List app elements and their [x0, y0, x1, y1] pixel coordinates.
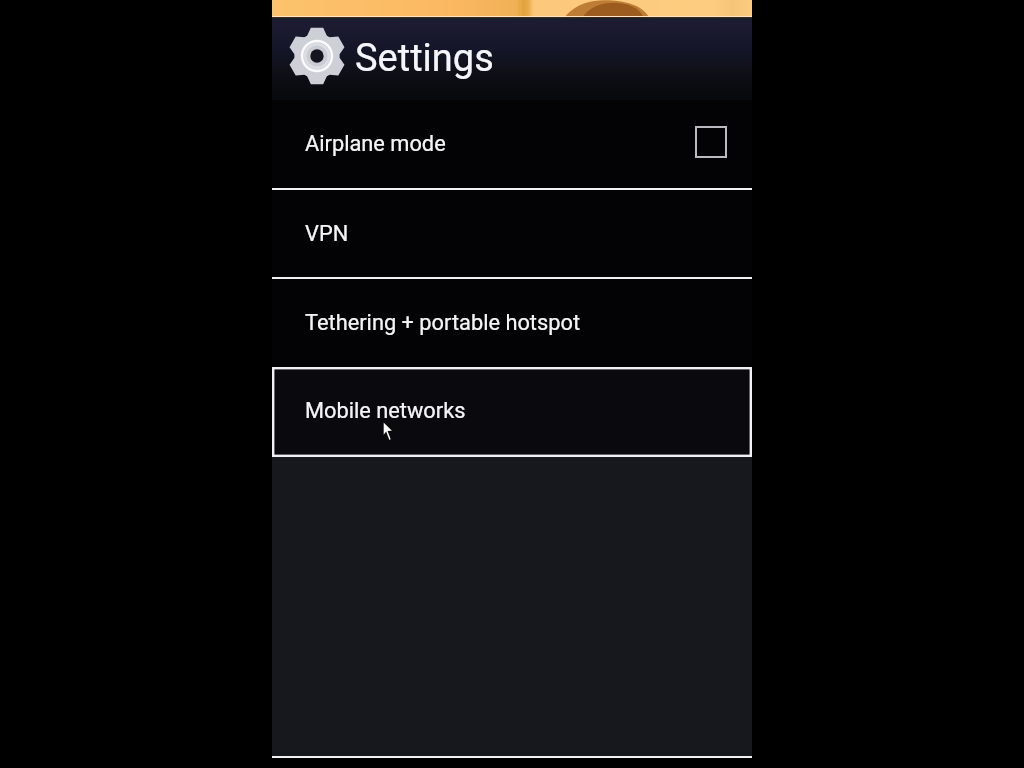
staticText: Settings	[355, 36, 494, 81]
button[interactable]: Airplane mode	[272, 100, 752, 188]
button[interactable]: Tethering + portable hotspot	[272, 279, 752, 367]
button[interactable]: VPN	[272, 190, 752, 277]
staticText: Airplane mode	[305, 131, 446, 157]
staticText: VPN	[305, 221, 349, 247]
button[interactable]: Mobile networks	[272, 367, 752, 457]
staticText: Tethering + portable hotspot	[305, 310, 581, 336]
staticText: Mobile networks	[305, 398, 466, 424]
button[interactable]: Airplane mode checkbox	[695, 126, 727, 158]
